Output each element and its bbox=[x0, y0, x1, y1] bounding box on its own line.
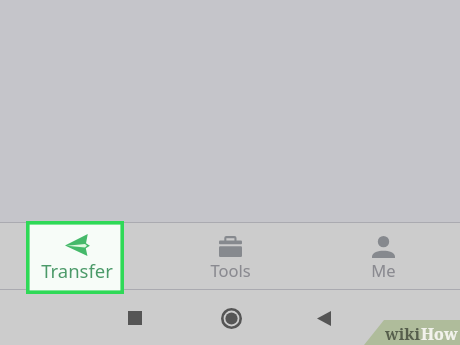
button[interactable]: Transfer bbox=[0, 223, 154, 289]
button[interactable]: Home bbox=[211, 298, 251, 338]
button[interactable]: Me bbox=[307, 223, 460, 289]
staticText: Me bbox=[371, 259, 396, 281]
button[interactable]: Back bbox=[304, 298, 344, 338]
staticText: How bbox=[421, 323, 458, 345]
staticText: wiki bbox=[385, 323, 421, 345]
button[interactable]: Recent apps bbox=[115, 298, 155, 338]
staticText: Transfer bbox=[41, 258, 113, 283]
button[interactable]: Tools bbox=[154, 223, 307, 289]
staticText: Tools bbox=[210, 259, 251, 281]
